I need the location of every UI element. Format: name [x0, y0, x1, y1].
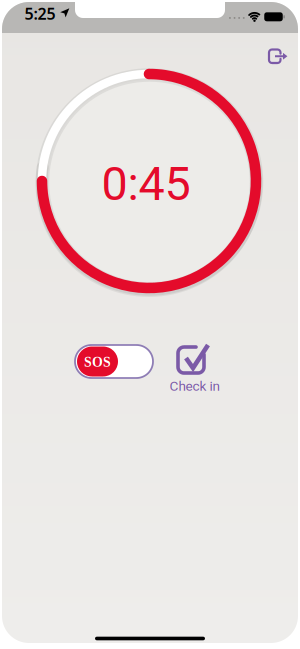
- staticText: Check in: [169, 378, 220, 394]
- button[interactable]: Log out: [266, 47, 290, 65]
- staticText: SOS: [84, 354, 111, 370]
- button[interactable]: Check in: [169, 342, 220, 394]
- staticText: 0:45: [101, 157, 190, 211]
- staticText: 5:25: [24, 3, 55, 24]
- button[interactable]: SOS: [75, 345, 153, 378]
